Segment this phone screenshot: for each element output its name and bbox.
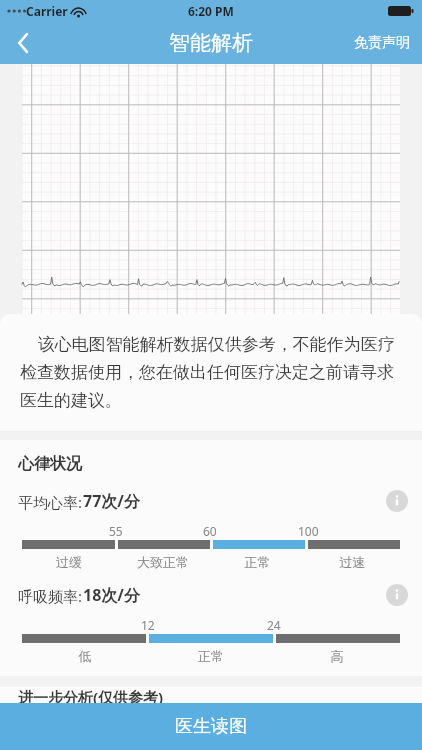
- staticText: 进一步分析(仅供参考): [18, 687, 164, 703]
- staticText: 大致正常: [116, 554, 210, 570]
- staticText: 智能解析: [169, 30, 253, 56]
- staticText: 18次/分: [83, 584, 140, 606]
- staticText: 过缓: [22, 554, 116, 570]
- staticText: 12: [141, 617, 155, 633]
- staticText: 6:20 PM: [188, 3, 234, 19]
- staticText: 心律状况: [18, 454, 82, 474]
- button[interactable]: Info: [386, 584, 408, 606]
- staticText: 77次/分: [83, 490, 140, 512]
- staticText: 高: [274, 648, 400, 664]
- staticText: 呼吸频率:: [18, 586, 83, 606]
- staticText: 低: [22, 648, 148, 664]
- staticText: 正常: [210, 554, 305, 570]
- staticText: Carrier: [26, 3, 68, 19]
- button[interactable]: 免责声明: [342, 24, 422, 62]
- staticText: 24: [267, 617, 281, 633]
- button[interactable]: Info: [386, 490, 408, 512]
- staticText: 过速: [305, 554, 400, 570]
- button[interactable]: 医生读图: [0, 703, 422, 750]
- staticText: 该心电图智能解析数据仅供参考，不能作为医疗检查数据使用，您在做出任何医疗决定之前…: [20, 332, 402, 411]
- staticText: 100: [298, 523, 319, 539]
- staticText: 正常: [148, 648, 274, 664]
- staticText: 免责声明: [354, 34, 410, 52]
- staticText: 55: [109, 523, 123, 539]
- staticText: 60: [203, 523, 217, 539]
- staticText: 医生读图: [175, 715, 247, 738]
- button[interactable]: Back: [0, 22, 46, 64]
- staticText: 平均心率:: [18, 492, 83, 512]
